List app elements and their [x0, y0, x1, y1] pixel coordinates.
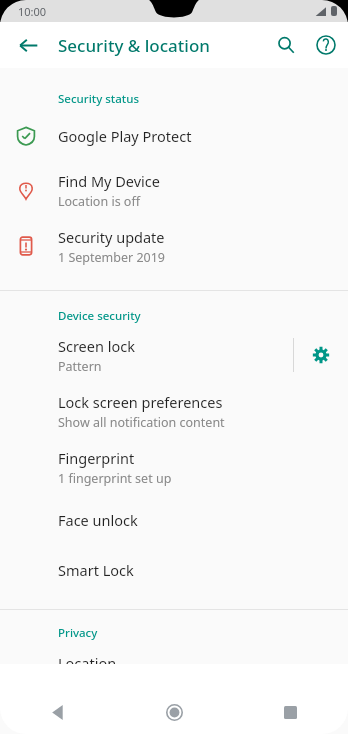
- button[interactable]: Face unlock: [0, 495, 348, 545]
- button[interactable]: Location: [0, 644, 348, 700]
- staticText: Show all notification content: [58, 414, 225, 431]
- button[interactable]: Find My Device: [0, 162, 348, 218]
- staticText: Security status: [58, 91, 139, 107]
- button[interactable]: Lock screen preferences: [0, 383, 348, 439]
- button[interactable]: Search: [266, 25, 306, 65]
- staticText: Pattern: [58, 358, 102, 375]
- staticText: Location is off: [58, 193, 141, 210]
- staticText: Security update: [58, 227, 165, 247]
- button[interactable]: Back: [8, 25, 48, 65]
- staticText: Find My Device: [58, 171, 160, 191]
- staticText: 1 September 2019: [58, 249, 166, 266]
- staticText: Screen lock: [58, 336, 135, 356]
- staticText: 10:00: [18, 4, 47, 19]
- staticText: Lock screen preferences: [58, 392, 223, 412]
- button[interactable]: Recent apps: [232, 690, 348, 734]
- button[interactable]: Screen lock: [0, 327, 293, 383]
- button[interactable]: Google Play Protect: [0, 110, 348, 162]
- staticText: Privacy: [58, 625, 98, 641]
- button[interactable]: Back: [0, 690, 116, 734]
- staticText: Smart Lock: [58, 560, 134, 580]
- staticText: Fingerprint: [58, 448, 135, 468]
- staticText: Location: [58, 653, 117, 673]
- button[interactable]: Fingerprint: [0, 439, 348, 495]
- button[interactable]: Security update: [0, 218, 348, 274]
- staticText: Security & location: [58, 34, 210, 57]
- staticText: Device security: [58, 308, 141, 324]
- button[interactable]: Screen lock settings: [294, 327, 348, 383]
- button[interactable]: Help: [306, 25, 346, 65]
- button[interactable]: Smart Lock: [0, 545, 348, 595]
- staticText: 1 fingerprint set up: [58, 470, 172, 487]
- staticText: Google Play Protect: [58, 126, 192, 146]
- staticText: Face unlock: [58, 510, 138, 530]
- button[interactable]: Home: [116, 690, 232, 734]
